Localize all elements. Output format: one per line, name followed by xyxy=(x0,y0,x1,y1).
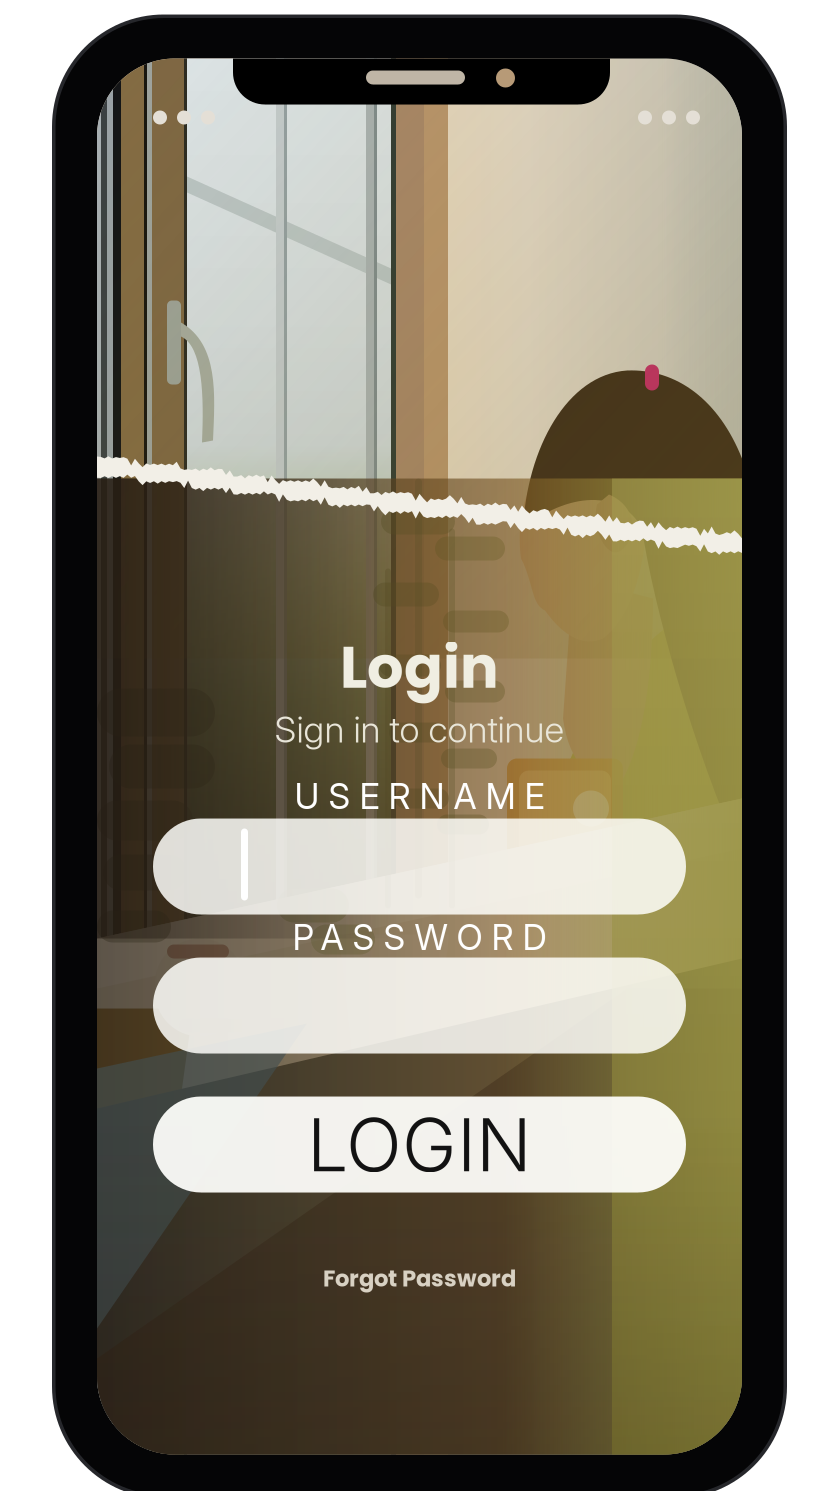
staticText: Sign in to continue xyxy=(274,707,564,751)
button[interactable]: LOGIN xyxy=(153,1096,686,1192)
staticText: PASSWORD xyxy=(292,916,546,958)
staticText: LOGIN xyxy=(307,1100,532,1189)
button[interactable] xyxy=(153,818,686,914)
staticText: Forgot Password xyxy=(323,1263,516,1294)
button[interactable] xyxy=(153,957,686,1053)
button[interactable]: Forgot Password xyxy=(97,1261,742,1295)
staticText: USERNAME xyxy=(294,775,544,817)
staticText: Login xyxy=(340,627,499,708)
